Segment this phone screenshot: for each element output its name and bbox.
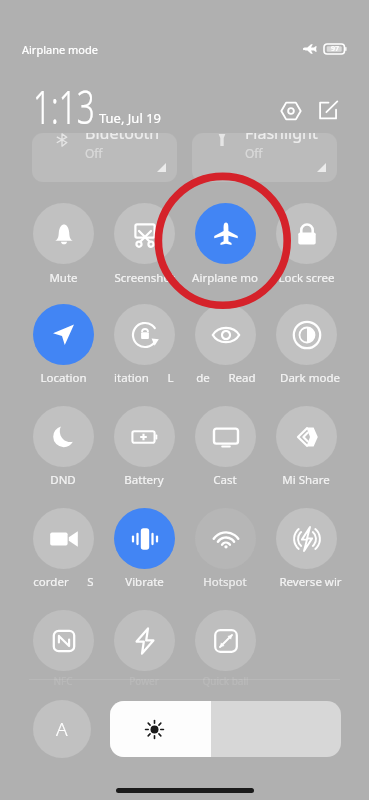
button[interactable]: Vibrate — [114, 508, 175, 569]
button[interactable]: Dark mode — [276, 304, 337, 365]
button[interactable]: Auto rotation — [114, 304, 175, 365]
button[interactable]: Hotspot — [195, 508, 256, 569]
button[interactable]: Screenshot — [114, 203, 175, 264]
button[interactable]: Screen recorder — [33, 508, 94, 569]
staticText: Airplane mo — [192, 270, 258, 286]
staticText: Cast — [213, 472, 237, 488]
staticText: Reverse wir — [279, 574, 342, 590]
button[interactable]: Do not disturb — [33, 406, 94, 467]
staticText: Off — [245, 145, 263, 161]
button[interactable]: Airplane mode — [195, 203, 256, 264]
staticText: 1:13 — [33, 75, 95, 138]
staticText: Flashlight — [245, 133, 318, 144]
staticText: Power — [129, 674, 159, 688]
staticText: corder — [33, 574, 69, 590]
staticText: Lock scree — [278, 270, 335, 286]
other: Airplane mode on — [302, 44, 317, 54]
button[interactable]: Ultra battery saver — [114, 610, 175, 671]
button[interactable]: Brightness — [110, 701, 341, 757]
staticText: Hotspot — [203, 574, 247, 590]
staticText: S — [87, 574, 94, 590]
staticText: Tue, Jul 19 — [99, 109, 161, 127]
staticText: DND — [50, 472, 76, 488]
staticText: L — [167, 370, 174, 386]
staticText: itation — [114, 370, 149, 386]
button[interactable]: Mi Share — [276, 406, 337, 467]
button[interactable]: Reading mode — [195, 304, 256, 365]
button[interactable]: Quick ball — [195, 610, 256, 671]
staticText: Read — [228, 370, 256, 386]
button[interactable]: Bluetooth — [32, 133, 177, 182]
staticText: Battery — [124, 472, 164, 488]
staticText: Airplane mode — [22, 42, 98, 57]
button[interactable]: Settings — [280, 100, 302, 122]
button[interactable]: Mute — [33, 203, 94, 264]
staticText: Vibrate — [125, 574, 164, 590]
staticText: Mute — [49, 270, 78, 286]
staticText: Mi Share — [282, 472, 330, 488]
other: Battery 97 percent — [324, 44, 347, 54]
button[interactable]: Reverse wireless charging — [276, 508, 337, 569]
staticText: Bluetooth — [85, 133, 160, 144]
button[interactable]: Battery saver — [114, 406, 175, 467]
staticText: 97 — [331, 44, 340, 54]
staticText: Quick ball — [202, 674, 249, 688]
button[interactable]: Edit tiles — [318, 100, 339, 121]
staticText: de — [196, 370, 210, 386]
button[interactable]: Flashlight — [192, 133, 337, 182]
staticText: Dark mode — [280, 370, 340, 386]
button[interactable]: Lock screen — [276, 203, 337, 264]
button[interactable]: Location — [33, 304, 94, 365]
staticText: NFC — [53, 674, 73, 688]
button[interactable]: Auto brightness — [33, 700, 91, 758]
staticText: A — [56, 716, 68, 742]
staticText: Screenshot — [114, 270, 175, 286]
button[interactable]: NFC — [33, 610, 94, 671]
staticText: Location — [40, 370, 87, 386]
button[interactable]: Cast — [195, 406, 256, 467]
staticText: Off — [85, 145, 103, 161]
